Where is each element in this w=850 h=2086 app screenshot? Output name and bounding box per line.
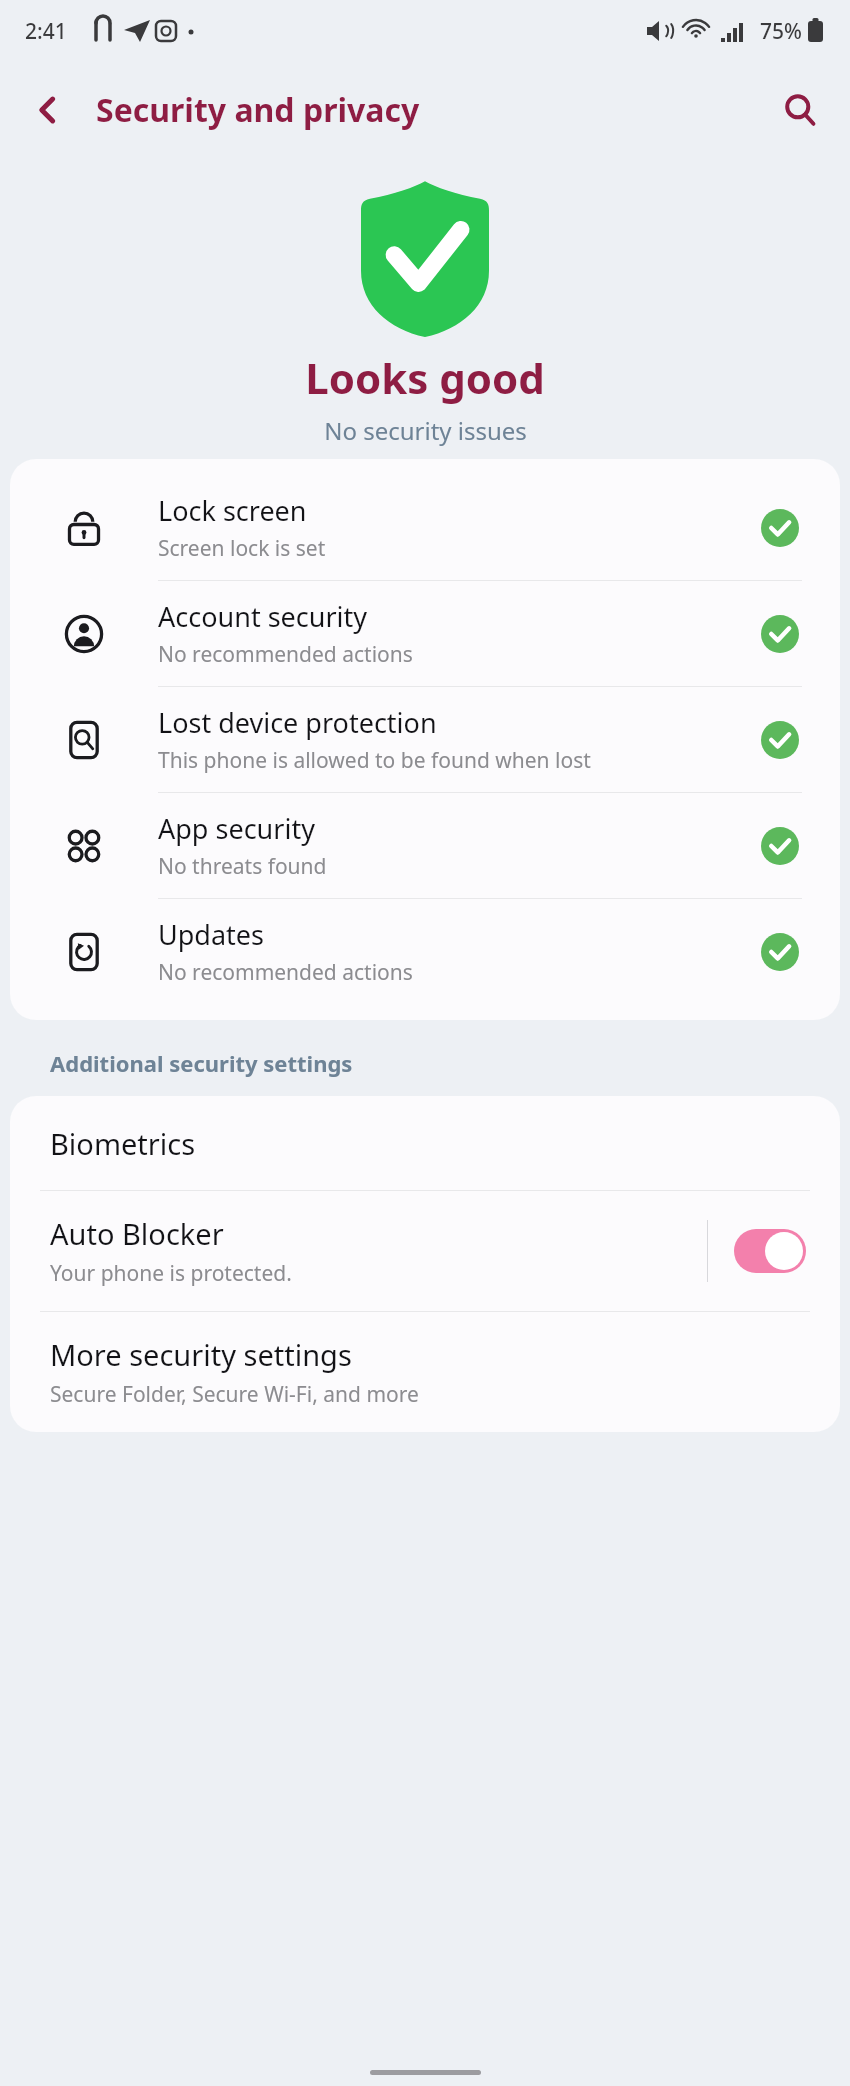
staticText: Account security [158,598,368,635]
staticText: 75% [760,17,802,46]
staticText: No recommended actions [158,958,413,987]
button[interactable]: App security [10,793,840,899]
staticText: Security and privacy [96,88,420,132]
staticText: More security settings [50,1335,352,1374]
staticText: Auto Blocker [50,1214,224,1253]
button[interactable]: Updates [10,899,840,1004]
staticText: 2:41 [25,17,67,46]
staticText: Updates [158,916,265,953]
button[interactable]: Back [20,82,76,138]
staticText: Lock screen [158,492,307,529]
staticText: This phone is allowed to be found when l… [158,746,591,775]
staticText: No recommended actions [158,640,413,669]
staticText: Secure Folder, Secure Wi-Fi, and more [50,1380,419,1409]
button[interactable]: Biometrics [10,1096,840,1190]
staticText: No threats found [158,852,327,881]
button[interactable]: Account security [10,581,840,687]
staticText: App security [158,810,315,847]
staticText: Your phone is protected. [50,1259,292,1288]
staticText: Lost device protection [158,704,437,741]
staticText: Screen lock is set [158,534,326,563]
button[interactable]: Lost device protection [10,687,840,793]
button[interactable]: Lock screen [10,475,840,581]
button[interactable]: Auto Blocker toggle, on [734,1229,806,1273]
staticText: Biometrics [50,1124,196,1163]
button[interactable]: More security settings [10,1312,840,1432]
staticText: Looks good [305,349,545,406]
staticText: No security issues [324,414,527,447]
button[interactable]: Auto Blocker [10,1191,840,1311]
staticText: Additional security settings [50,1048,353,1078]
button[interactable]: Search [770,80,830,140]
